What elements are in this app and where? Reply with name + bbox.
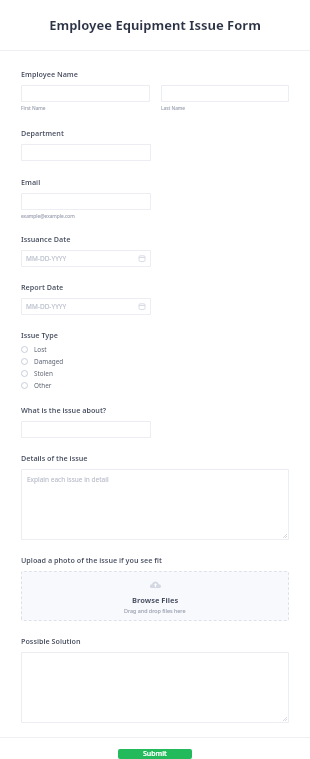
- button[interactable]: Lost: [21, 343, 289, 355]
- staticText: Upload a photo of the issue if you see f…: [21, 555, 162, 565]
- staticText: Department: [21, 128, 64, 138]
- staticText: What is the issue about?: [21, 405, 107, 415]
- button[interactable]: [21, 144, 151, 161]
- staticText: Report Date: [21, 282, 64, 292]
- button[interactable]: [21, 193, 151, 210]
- staticText: example@example.com: [21, 213, 75, 220]
- staticText: MM-DD-YYYY: [26, 302, 67, 311]
- staticText: Drag and drop files here: [124, 607, 186, 614]
- button[interactable]: Explain each issue in detail: [21, 469, 289, 540]
- button[interactable]: [21, 85, 150, 102]
- button[interactable]: Stolen: [21, 367, 289, 379]
- button[interactable]: [161, 85, 289, 102]
- staticText: Email: [21, 177, 41, 187]
- button[interactable]: Other: [21, 379, 289, 391]
- staticText: Issuance Date: [21, 234, 71, 244]
- staticText: Browse Files: [132, 595, 179, 605]
- staticText: Possible Solution: [21, 636, 81, 646]
- button[interactable]: Damaged: [21, 355, 289, 367]
- staticText: Employee Name: [21, 69, 78, 79]
- button[interactable]: MM-DD-YYYY: [21, 250, 151, 267]
- button[interactable]: MM-DD-YYYY: [21, 298, 151, 315]
- button[interactable]: [21, 421, 151, 438]
- staticText: Employee Equipment Issue Form: [0, 16, 310, 34]
- staticText: Explain each issue in detail: [27, 475, 109, 484]
- staticText: Other: [34, 381, 52, 390]
- staticText: First Name: [21, 105, 46, 112]
- staticText: Damaged: [34, 357, 64, 366]
- button[interactable]: Submit: [118, 749, 192, 759]
- staticText: Stolen: [34, 369, 53, 378]
- staticText: Details of the issue: [21, 453, 88, 463]
- staticText: MM-DD-YYYY: [26, 254, 67, 263]
- staticText: Submit: [143, 749, 167, 759]
- button[interactable]: Browse Files: [21, 571, 289, 621]
- staticText: Lost: [34, 345, 47, 354]
- staticText: Last Name: [161, 105, 186, 112]
- button[interactable]: [21, 652, 289, 723]
- staticText: Issue Type: [21, 330, 58, 340]
